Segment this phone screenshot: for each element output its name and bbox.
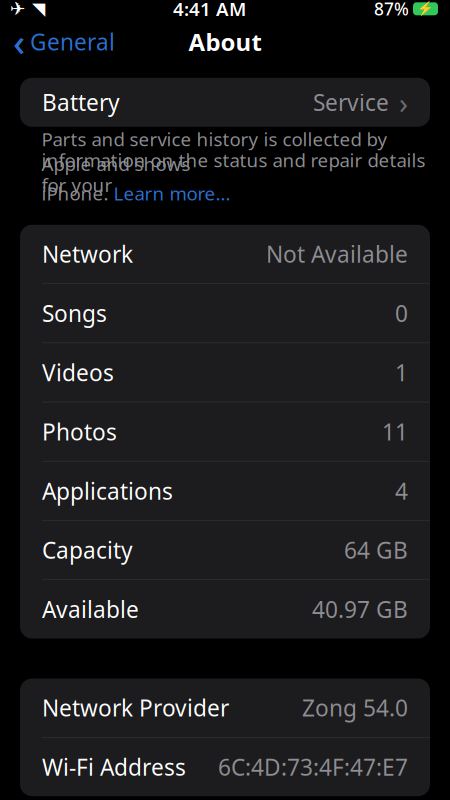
staticText: General — [30, 27, 115, 57]
staticText: 6C:4D:73:4F:47:E7 — [218, 752, 408, 782]
staticText: Parts and service history is collected b… — [41, 126, 387, 176]
staticText: Battery — [42, 87, 120, 117]
staticText: Network — [42, 239, 133, 269]
staticText: Capacity — [42, 535, 133, 565]
staticText: Applications — [42, 476, 173, 506]
button[interactable]: Songs — [20, 284, 430, 342]
staticText: Wi-Fi Address — [42, 752, 186, 782]
staticText: 40.97 GB — [312, 594, 408, 624]
staticText: information on the status and repair det… — [41, 147, 425, 197]
staticText: Network Provider — [42, 693, 229, 723]
staticText: › — [399, 83, 408, 122]
staticText: 87% — [374, 0, 409, 20]
button[interactable]: Wi-Fi Address — [20, 738, 430, 796]
staticText: ✈ — [10, 0, 26, 19]
button[interactable]: Network Provider — [20, 678, 430, 737]
staticText: Not Available — [266, 239, 408, 269]
button[interactable]: Videos — [20, 343, 430, 402]
staticText: 4 — [395, 476, 408, 506]
staticText: Videos — [42, 357, 114, 387]
button[interactable]: Applications — [20, 462, 430, 520]
staticText: ‹ — [13, 17, 25, 67]
staticText: iPhone. — [41, 181, 113, 206]
button[interactable]: Learn more... — [113, 181, 230, 206]
staticText: Service — [313, 87, 389, 117]
staticText: Available — [42, 594, 139, 624]
button[interactable]: Battery — [20, 78, 430, 127]
staticText: About — [188, 26, 261, 58]
staticText: 1 — [395, 357, 408, 387]
button[interactable]: Capacity — [20, 521, 430, 579]
button[interactable]: Available — [20, 580, 430, 638]
button[interactable]: Photos — [20, 402, 430, 461]
staticText: 11 — [382, 417, 408, 447]
staticText: 64 GB — [344, 535, 408, 565]
button[interactable]: Network — [20, 225, 430, 283]
button[interactable]: ‹ — [0, 22, 125, 62]
staticText: ⚡ — [417, 1, 434, 16]
staticText: Songs — [42, 298, 107, 328]
staticText: 0 — [395, 298, 408, 328]
staticText: Learn more... — [113, 181, 230, 206]
staticText: ◥ — [32, 0, 45, 19]
staticText: Photos — [42, 417, 117, 447]
staticText: 4:41 AM — [173, 0, 246, 21]
staticText: Zong 54.0 — [302, 693, 408, 723]
